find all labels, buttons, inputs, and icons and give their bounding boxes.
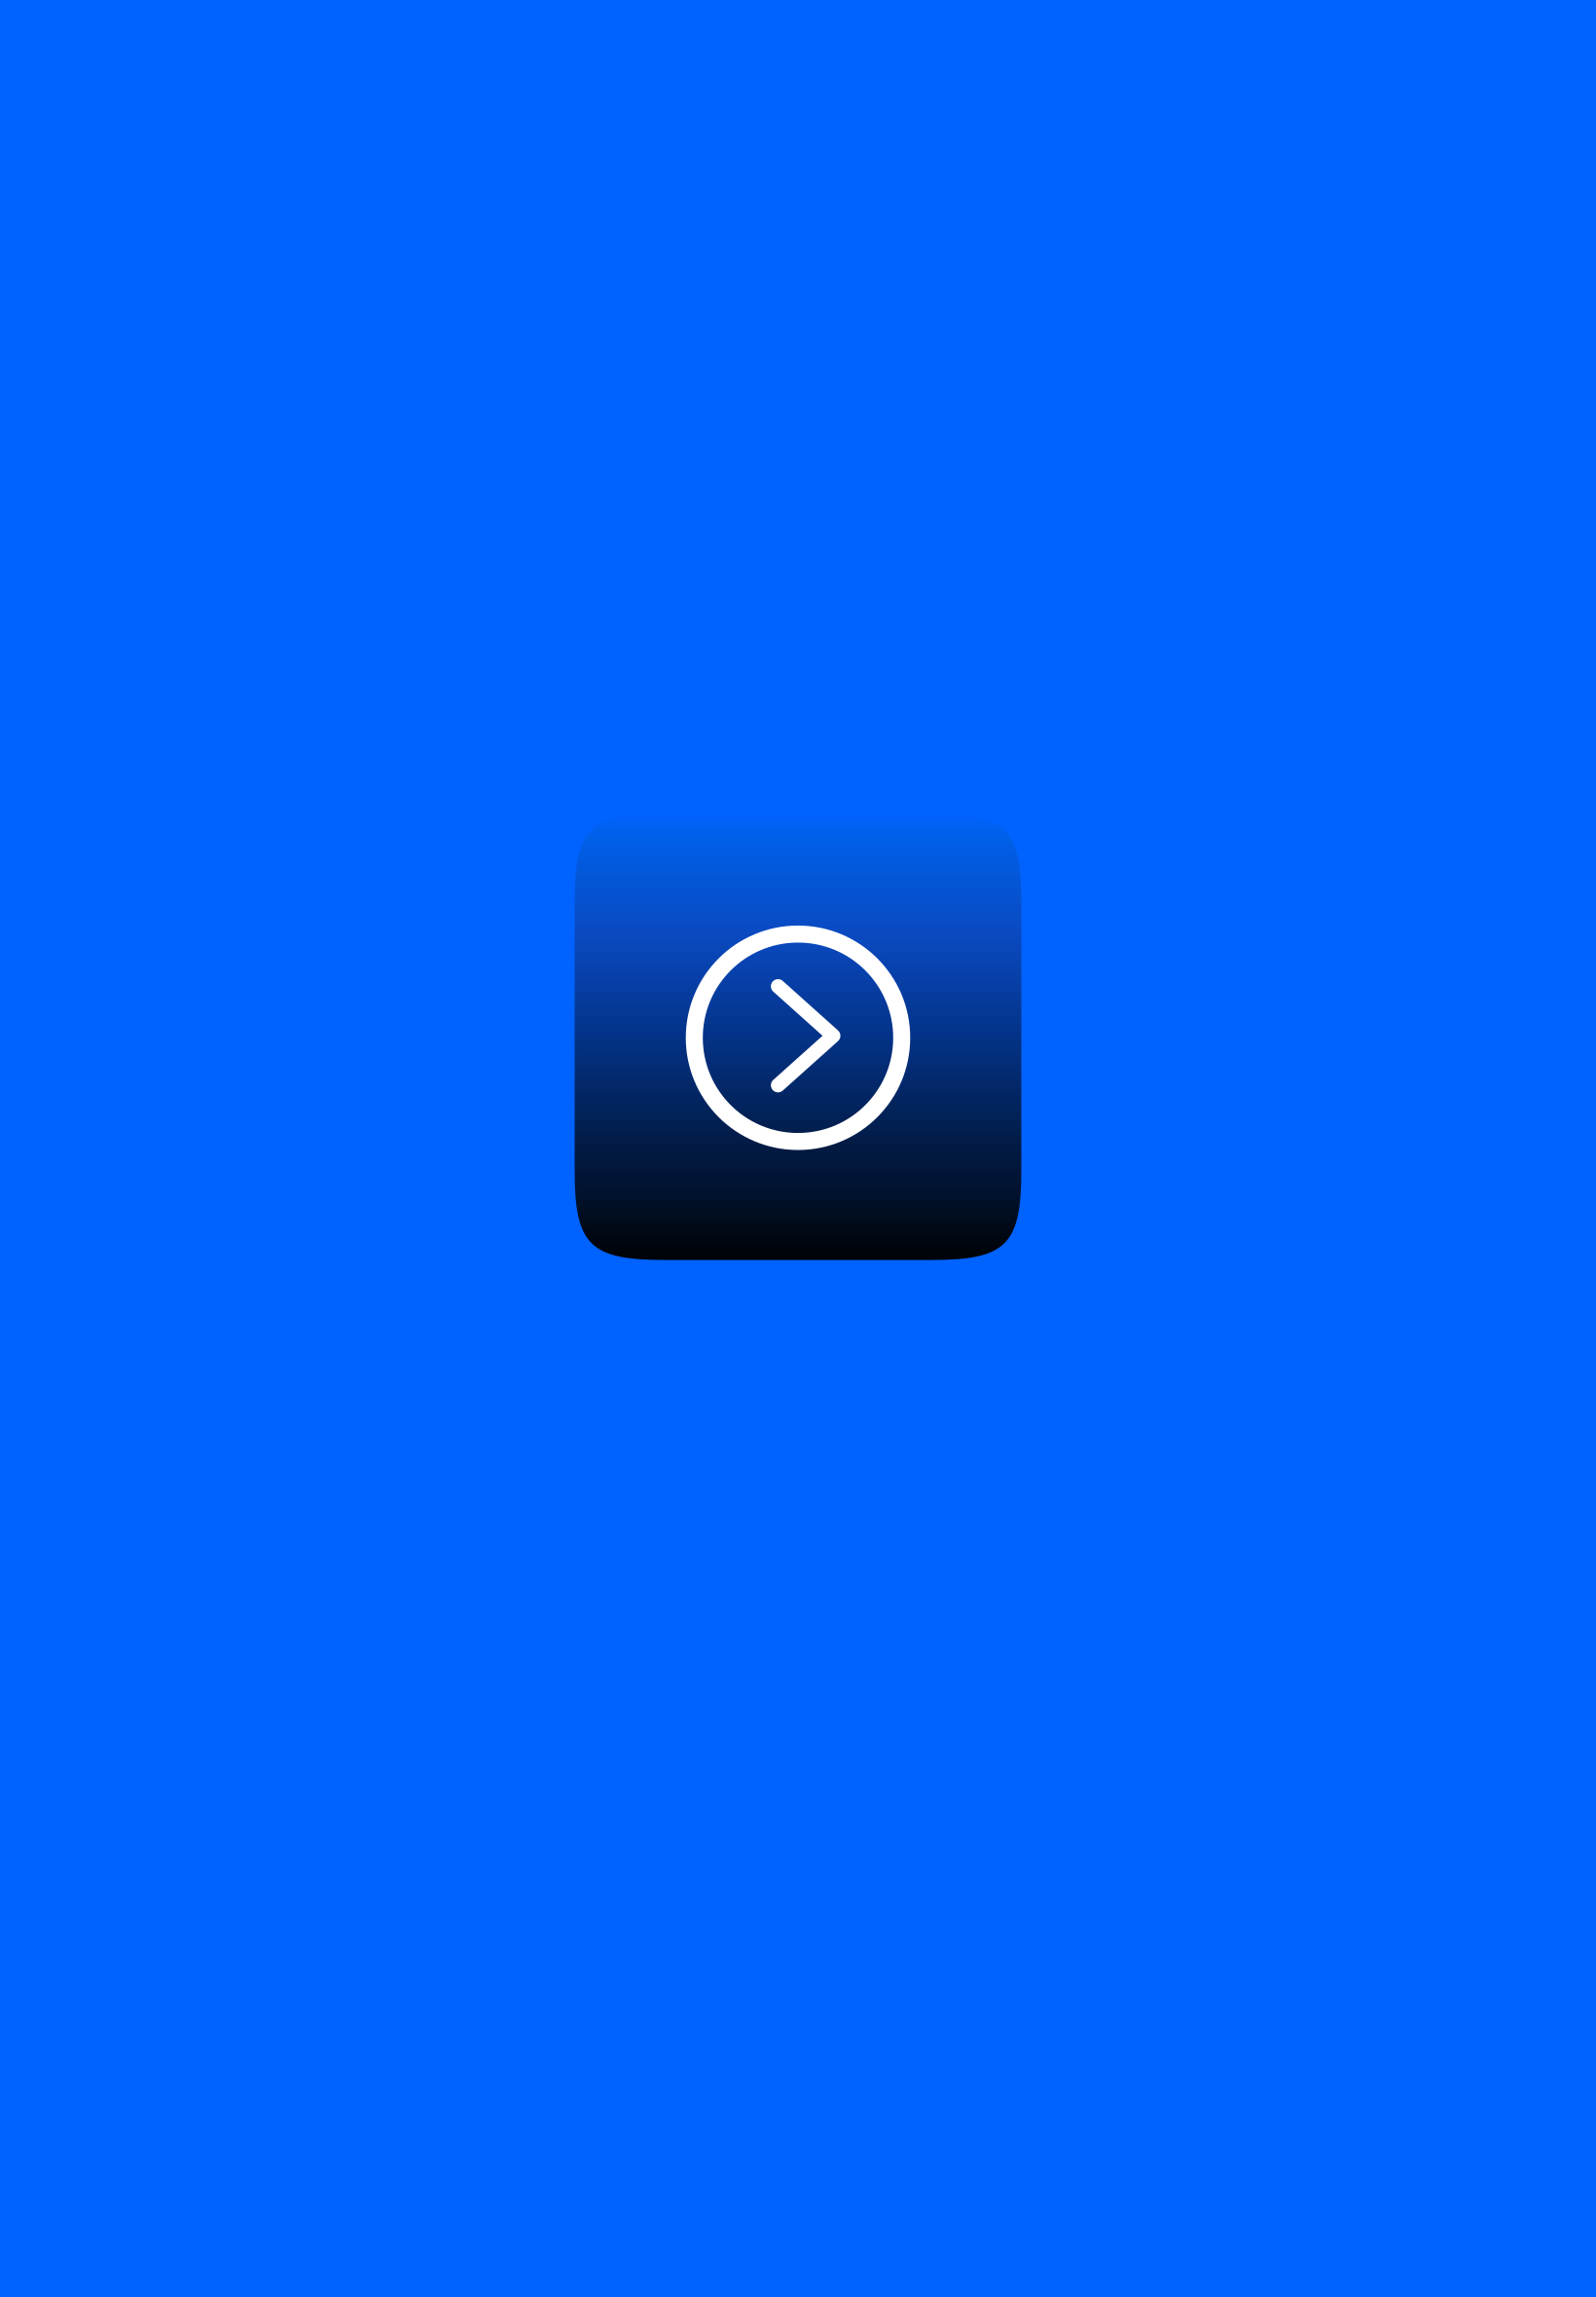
button[interactable]: Continue (575, 813, 1021, 1260)
